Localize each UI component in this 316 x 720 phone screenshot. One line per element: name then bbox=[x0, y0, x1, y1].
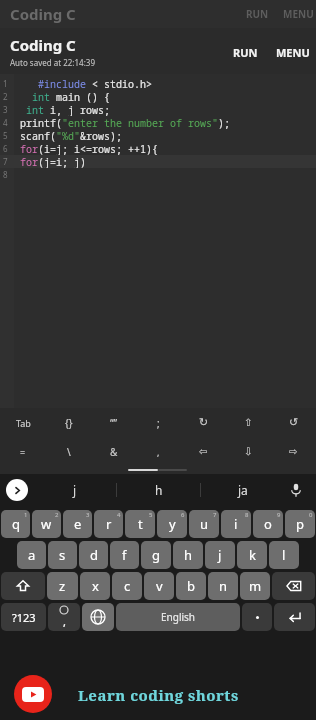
button[interactable]: a bbox=[17, 541, 46, 569]
staticText: ⇩ bbox=[244, 446, 253, 458]
button[interactable]: x bbox=[80, 572, 110, 600]
button[interactable]: r bbox=[94, 510, 123, 538]
button[interactable]: ↺ bbox=[271, 408, 316, 437]
staticText: ↻ bbox=[199, 416, 209, 429]
button[interactable]: = bbox=[0, 437, 46, 466]
staticText: 6 bbox=[3, 143, 8, 154]
button[interactable]: Shift bbox=[1, 572, 45, 600]
staticText: Coding C bbox=[10, 35, 76, 55]
button[interactable]: ?123 bbox=[1, 603, 46, 631]
button[interactable]: ; bbox=[136, 408, 181, 437]
staticText: 4 bbox=[117, 511, 121, 519]
staticText: ?123 bbox=[12, 610, 36, 625]
staticText: ⇦ bbox=[199, 446, 208, 458]
button[interactable]: MENU bbox=[270, 39, 316, 66]
staticText: scanf("%d"&rows); bbox=[14, 129, 122, 142]
staticText: printf("enter the number of rows"); bbox=[14, 116, 230, 129]
staticText: 6 bbox=[181, 511, 185, 519]
button[interactable]: Enter bbox=[274, 603, 315, 631]
button[interactable]: o bbox=[253, 510, 283, 538]
staticText: #include < stdio.h> bbox=[14, 77, 152, 90]
button[interactable]: Change language bbox=[82, 603, 114, 631]
staticText: 1 bbox=[3, 78, 8, 89]
button[interactable]: q bbox=[1, 510, 30, 538]
button[interactable]: & bbox=[91, 437, 136, 466]
button[interactable]: v bbox=[144, 572, 174, 600]
staticText: i bbox=[234, 515, 238, 533]
button[interactable]: c bbox=[112, 572, 142, 600]
staticText: h bbox=[184, 546, 193, 564]
staticText: for(j=i; j) bbox=[14, 155, 86, 168]
button[interactable]: j bbox=[205, 541, 235, 569]
staticText: g bbox=[152, 546, 160, 564]
button[interactable]: d bbox=[79, 541, 108, 569]
button[interactable]: w bbox=[32, 510, 61, 538]
button[interactable]: Backspace bbox=[272, 572, 315, 600]
button[interactable]: j bbox=[34, 474, 116, 506]
button[interactable]: p bbox=[285, 510, 315, 538]
button[interactable]: m bbox=[240, 572, 270, 600]
button[interactable]: h bbox=[117, 474, 200, 506]
button[interactable]: k bbox=[237, 541, 267, 569]
staticText: x bbox=[92, 577, 99, 595]
button[interactable]: h bbox=[173, 541, 203, 569]
staticText: 9 bbox=[277, 511, 281, 519]
button[interactable]: ⇧ bbox=[226, 408, 271, 437]
staticText: , bbox=[63, 614, 66, 629]
staticText: j bbox=[73, 482, 77, 498]
button[interactable]: y bbox=[157, 510, 187, 538]
button[interactable]: , bbox=[136, 437, 181, 466]
staticText: Auto saved at 22:14:39 bbox=[10, 57, 95, 68]
staticText: h bbox=[155, 482, 163, 498]
staticText: y bbox=[169, 515, 176, 533]
button[interactable]: b bbox=[176, 572, 206, 600]
button[interactable]: English bbox=[116, 603, 240, 631]
staticText: Learn coding shorts bbox=[78, 685, 239, 705]
staticText: 7 bbox=[213, 511, 217, 519]
staticText: w bbox=[41, 515, 52, 533]
staticText: v bbox=[156, 577, 163, 595]
button[interactable]: ⇦ bbox=[181, 437, 226, 466]
staticText: , bbox=[157, 446, 160, 458]
staticText: 7 bbox=[3, 156, 8, 167]
button[interactable]: t bbox=[125, 510, 155, 538]
staticText: r bbox=[106, 515, 112, 533]
button[interactable]: ⇨ bbox=[271, 437, 316, 466]
staticText: u bbox=[200, 515, 209, 533]
staticText: MENU bbox=[276, 45, 310, 60]
button[interactable]: Voice input bbox=[284, 478, 308, 502]
button[interactable]: “” bbox=[91, 408, 136, 437]
button[interactable]: Expand toolbar bbox=[6, 479, 28, 501]
staticText: for(i=j; i<=rows; ++1){ bbox=[14, 142, 158, 155]
button[interactable]: RUN bbox=[227, 39, 264, 66]
staticText: ⇨ bbox=[289, 446, 298, 458]
button[interactable]: Tab bbox=[0, 408, 46, 437]
staticText: \ bbox=[67, 445, 71, 459]
button[interactable]: g bbox=[141, 541, 171, 569]
button[interactable]: ↻ bbox=[181, 408, 226, 437]
button[interactable]: ⇩ bbox=[226, 437, 271, 466]
button[interactable]: u bbox=[189, 510, 219, 538]
button[interactable]: i bbox=[221, 510, 251, 538]
staticText: b bbox=[187, 577, 195, 595]
staticText: s bbox=[59, 546, 66, 564]
staticText: q bbox=[12, 515, 20, 533]
button[interactable]: ja bbox=[201, 474, 284, 506]
staticText: 3 bbox=[3, 104, 8, 115]
button[interactable]: Period bbox=[242, 603, 272, 631]
button[interactable]: n bbox=[208, 572, 238, 600]
staticText: ; bbox=[157, 416, 160, 430]
staticText: f bbox=[122, 546, 127, 564]
button[interactable]: {} bbox=[46, 408, 91, 437]
button[interactable]: l bbox=[269, 541, 299, 569]
button[interactable]: 1 bbox=[0, 74, 316, 408]
button[interactable]: e bbox=[63, 510, 92, 538]
staticText: n bbox=[219, 577, 228, 595]
button[interactable]: z bbox=[47, 572, 78, 600]
staticText: l bbox=[282, 546, 286, 564]
button[interactable]: f bbox=[110, 541, 139, 569]
button[interactable]: s bbox=[48, 541, 77, 569]
button[interactable]: Emoji and comma bbox=[48, 603, 80, 631]
staticText: Tab bbox=[16, 417, 31, 429]
button[interactable]: \ bbox=[46, 437, 91, 466]
